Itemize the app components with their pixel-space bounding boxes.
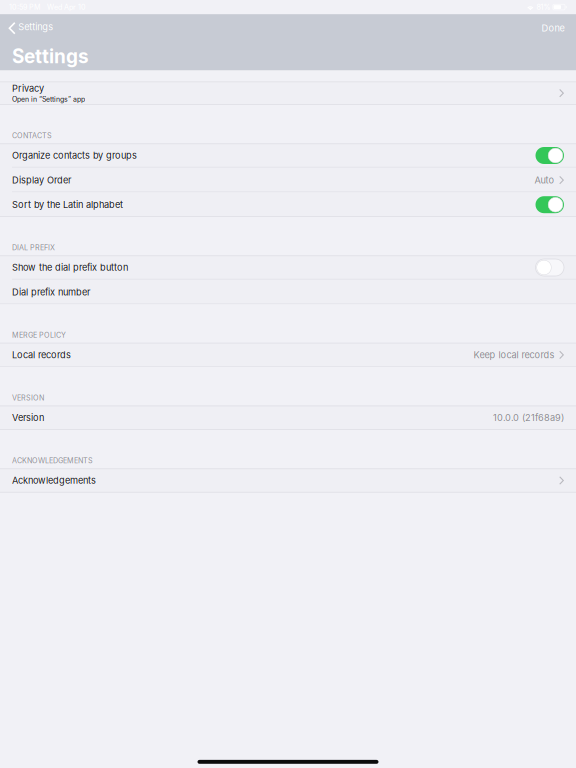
staticText: Sort by the Latin alphabet [12, 199, 123, 210]
staticText: CONTACTS [12, 131, 52, 140]
staticText: Open in “Settings” app [12, 95, 85, 103]
staticText: DIAL PREFIX [12, 243, 55, 252]
staticText: Version [12, 412, 44, 423]
staticText: ACKNOWLEDGEMENTS [12, 456, 93, 465]
staticText: Local records [12, 349, 71, 360]
button[interactable]: Organize contacts by groups [0, 143, 576, 168]
staticText: Organize contacts by groups [12, 150, 137, 161]
staticText: 81% [536, 3, 550, 11]
staticText: 10.0.0 (21f68a9) [493, 412, 564, 423]
button[interactable]: Dial prefix number [0, 280, 576, 304]
staticText: Settings [18, 21, 53, 32]
staticText: Dial prefix number [12, 286, 90, 298]
staticText: Acknowledgements [12, 475, 96, 486]
button[interactable]: Sort by the Latin alphabet [0, 192, 576, 217]
button[interactable]: Show the dial prefix button [0, 255, 576, 280]
button[interactable]: Local records [0, 343, 576, 367]
staticText: Settings [12, 45, 89, 68]
staticText: VERSION [12, 393, 44, 402]
staticText: Display Order [12, 174, 71, 186]
staticText: Keep local records [473, 349, 554, 360]
staticText: Done [541, 23, 564, 34]
staticText: MERGE POLICY [12, 331, 66, 339]
button[interactable]: Acknowledgements [0, 468, 576, 493]
button[interactable]: Settings [0, 20, 53, 36]
button[interactable]: Display Order [0, 168, 576, 192]
staticText: Show the dial prefix button [12, 262, 128, 273]
staticText: Auto [534, 174, 554, 186]
staticText: 10:59 PM Wed Apr 10 [9, 3, 86, 11]
button[interactable]: Version [0, 405, 576, 430]
button[interactable]: Done [541, 20, 576, 37]
staticText: Privacy [12, 83, 44, 94]
button[interactable]: Privacy [0, 81, 576, 105]
